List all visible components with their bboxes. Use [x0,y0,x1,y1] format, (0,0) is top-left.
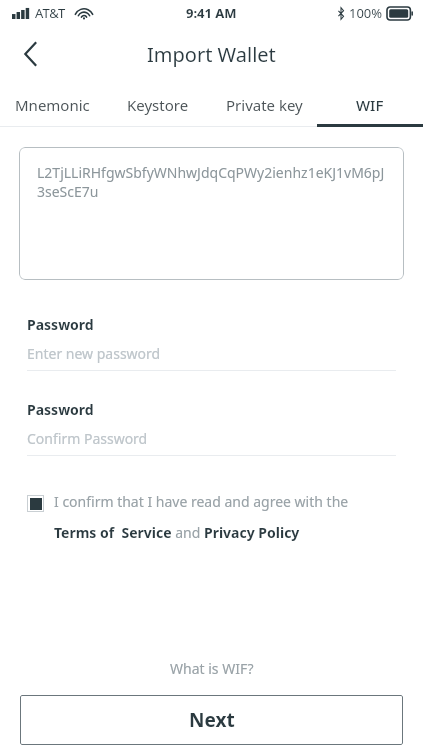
staticText: Import Wallet [147,41,276,68]
staticText: Private key [226,95,303,115]
button[interactable]: I confirm checkbox [27,495,44,512]
button[interactable]: Enter new password [27,344,396,363]
button[interactable]: WIF [317,82,423,127]
staticText: AT&T [35,4,66,22]
staticText: 9:41 AM [186,4,237,22]
staticText: Password [27,400,94,419]
staticText: Enter new password [27,344,161,363]
staticText: Keystore [127,95,189,115]
button[interactable]: Back [8,32,52,76]
staticText: Mnemonic [15,95,90,115]
staticText: Next [189,707,235,733]
staticText: 100% [349,4,383,22]
staticText: Password [27,315,94,334]
staticText: I confirm that I have read and agree wit… [54,492,349,511]
button[interactable]: Terms of Service and Privacy Policy [54,523,300,542]
staticText: What is WIF? [170,659,254,678]
button[interactable]: Confirm Password [27,429,396,448]
staticText: Confirm Password [27,429,148,448]
button[interactable]: Next [20,695,403,745]
button[interactable]: Keystore [105,82,211,127]
staticText: WIF [356,95,384,115]
button[interactable]: Mnemonic [0,82,105,127]
button[interactable]: L2TjLLiRHfgwSbfyWNhwJdqCqPWy2ienhz1eKJ1v… [19,147,404,280]
button[interactable]: Private key [211,82,317,127]
staticText: L2TjLLiRHfgwSbfyWNhwJdqCqPWy2ienhz1eKJ1v… [37,163,386,201]
